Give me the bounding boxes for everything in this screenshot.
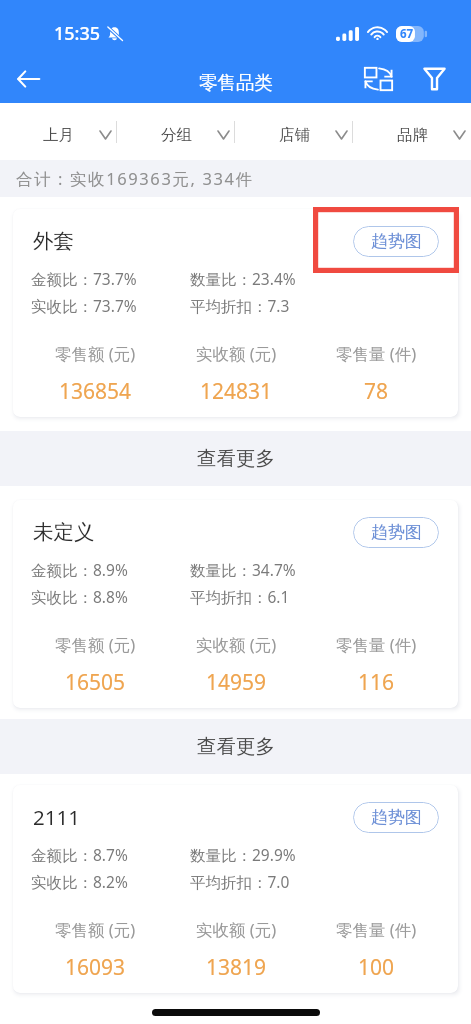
staticText: 趋势图 [371,807,422,828]
staticText: 124831 [200,377,273,406]
staticText: 零售量 (件) [336,918,417,941]
staticText: 实收比：73.7% [31,295,190,316]
button[interactable]: 分组 [117,103,235,160]
staticText: 零售额 (元) [55,918,136,941]
button[interactable]: Compare [354,55,402,103]
staticText: 平均折扣：6.1 [190,586,290,607]
staticText: 趋势图 [371,522,422,543]
button[interactable]: 外套 [13,209,458,417]
staticText: 实收额 (元) [196,342,277,365]
staticText: 零售额 (元) [55,633,136,656]
staticText: 未定义 [33,519,95,545]
staticText: 查看更多 [197,446,275,471]
staticText: 平均折扣：7.3 [190,295,290,316]
staticText: 实收比：8.2% [31,871,190,892]
staticText: 数量比：23.4% [190,268,296,289]
button[interactable]: 趋势图 [353,226,439,257]
staticText: 13819 [206,953,267,982]
staticText: 100 [358,953,395,982]
staticText: 金额比：8.7% [31,844,190,865]
staticText: 16093 [65,953,126,982]
staticText: 实收比：8.8% [31,586,190,607]
staticText: 趋势图 [371,231,422,252]
staticText: 分组 [161,125,192,145]
button[interactable]: 趋势图 [353,802,439,833]
staticText: 78 [364,377,389,406]
staticText: 零售额 (元) [55,342,136,365]
staticText: 品牌 [397,125,428,145]
staticText: 外套 [33,228,74,254]
button[interactable]: 上月 [0,103,117,160]
button[interactable]: 品牌 [353,103,471,160]
staticText: 上月 [43,125,74,145]
staticText: 2111 [33,803,80,831]
button[interactable]: 店铺 [235,103,353,160]
staticText: 店铺 [279,125,310,145]
button[interactable]: 2111 [13,785,458,993]
staticText: 67 [400,26,414,42]
staticText: 116 [358,668,395,697]
staticText: 平均折扣：7.0 [190,871,290,892]
button[interactable]: Filter [410,55,458,103]
button[interactable]: 趋势图 [353,517,439,548]
staticText: 零售量 (件) [336,342,417,365]
staticText: 零售品类 [199,71,273,94]
staticText: 14959 [206,668,267,697]
staticText: 金额比：8.9% [31,559,190,580]
staticText: 数量比：29.9% [190,844,296,865]
staticText: 零售量 (件) [336,633,417,656]
button[interactable]: Back [0,55,56,103]
staticText: 数量比：34.7% [190,559,296,580]
staticText: 实收额 (元) [196,633,277,656]
button[interactable]: 查看更多 [0,431,471,486]
button[interactable]: 未定义 [13,500,458,708]
staticText: 合计 : 实收169363元, 334件 [16,167,254,190]
button[interactable]: 查看更多 [0,719,471,774]
staticText: 136854 [59,377,132,406]
staticText: 15:35 [54,21,101,46]
staticText: 金额比：73.7% [31,268,190,289]
staticText: 查看更多 [197,734,275,759]
staticText: 实收额 (元) [196,918,277,941]
staticText: 16505 [65,668,126,697]
